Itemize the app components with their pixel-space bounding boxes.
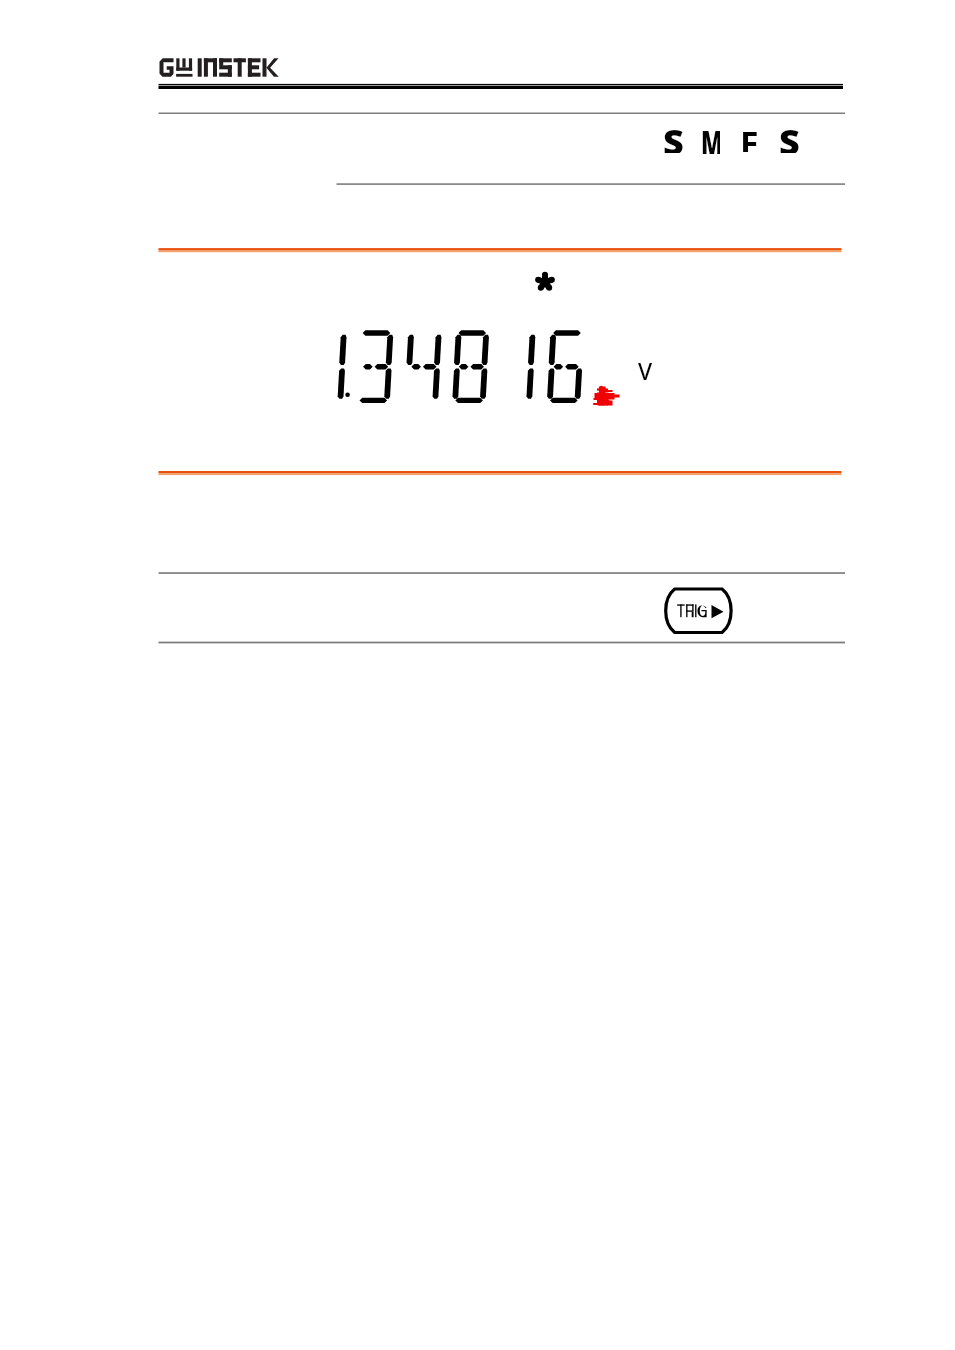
staticText: M [701, 120, 720, 154]
button[interactable]: M [698, 126, 724, 158]
button[interactable]: F [737, 126, 760, 158]
button[interactable]: S [775, 124, 801, 160]
button[interactable]: TRIG [662, 586, 735, 636]
staticText: F [740, 120, 759, 152]
staticText: V [638, 355, 653, 386]
staticText: S [663, 117, 684, 153]
button[interactable]: S [659, 124, 685, 160]
staticText: S [779, 117, 800, 153]
